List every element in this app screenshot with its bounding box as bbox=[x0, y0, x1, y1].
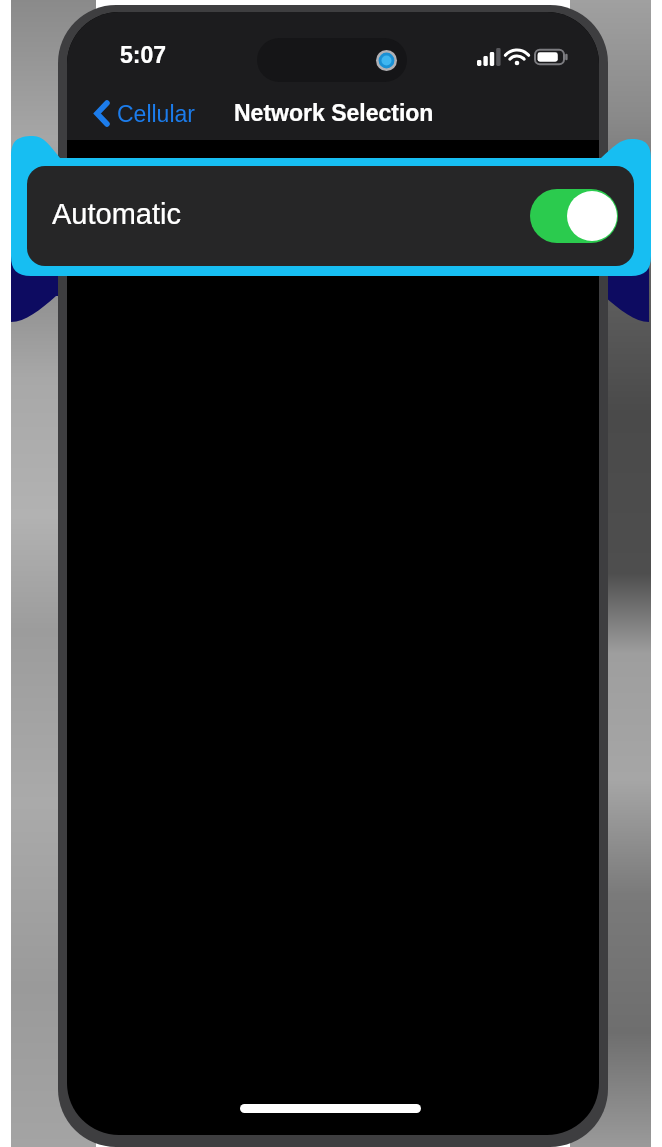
staticText: Cellular bbox=[117, 101, 195, 127]
staticText: 5:07 bbox=[120, 42, 167, 68]
button[interactable]: Automatic bbox=[27, 166, 634, 266]
staticText: Automatic bbox=[52, 198, 181, 230]
staticText: Network Selection bbox=[234, 100, 434, 126]
button[interactable]: Automatic toggle bbox=[530, 189, 618, 243]
button[interactable]: Cellular bbox=[90, 94, 199, 133]
